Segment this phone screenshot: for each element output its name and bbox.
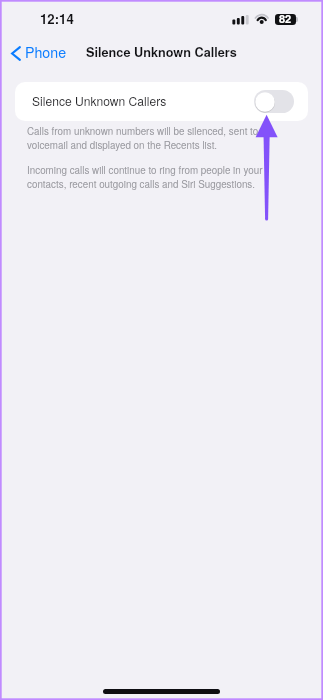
button[interactable]: Phone [0,39,75,65]
button[interactable]: Silence Unknown Callers switch [254,90,294,113]
staticText: 12:14 [40,9,74,28]
button[interactable]: Silence Unknown Callers [15,82,308,121]
staticText: Phone [25,42,67,62]
staticText: Incoming calls will continue to ring fro… [27,163,263,191]
staticText: 82 [279,11,292,27]
staticText: Calls from unknown numbers will be silen… [27,124,259,152]
staticText: Silence Unknown Callers [32,92,167,109]
staticText: Silence Unknown Callers [86,43,237,61]
